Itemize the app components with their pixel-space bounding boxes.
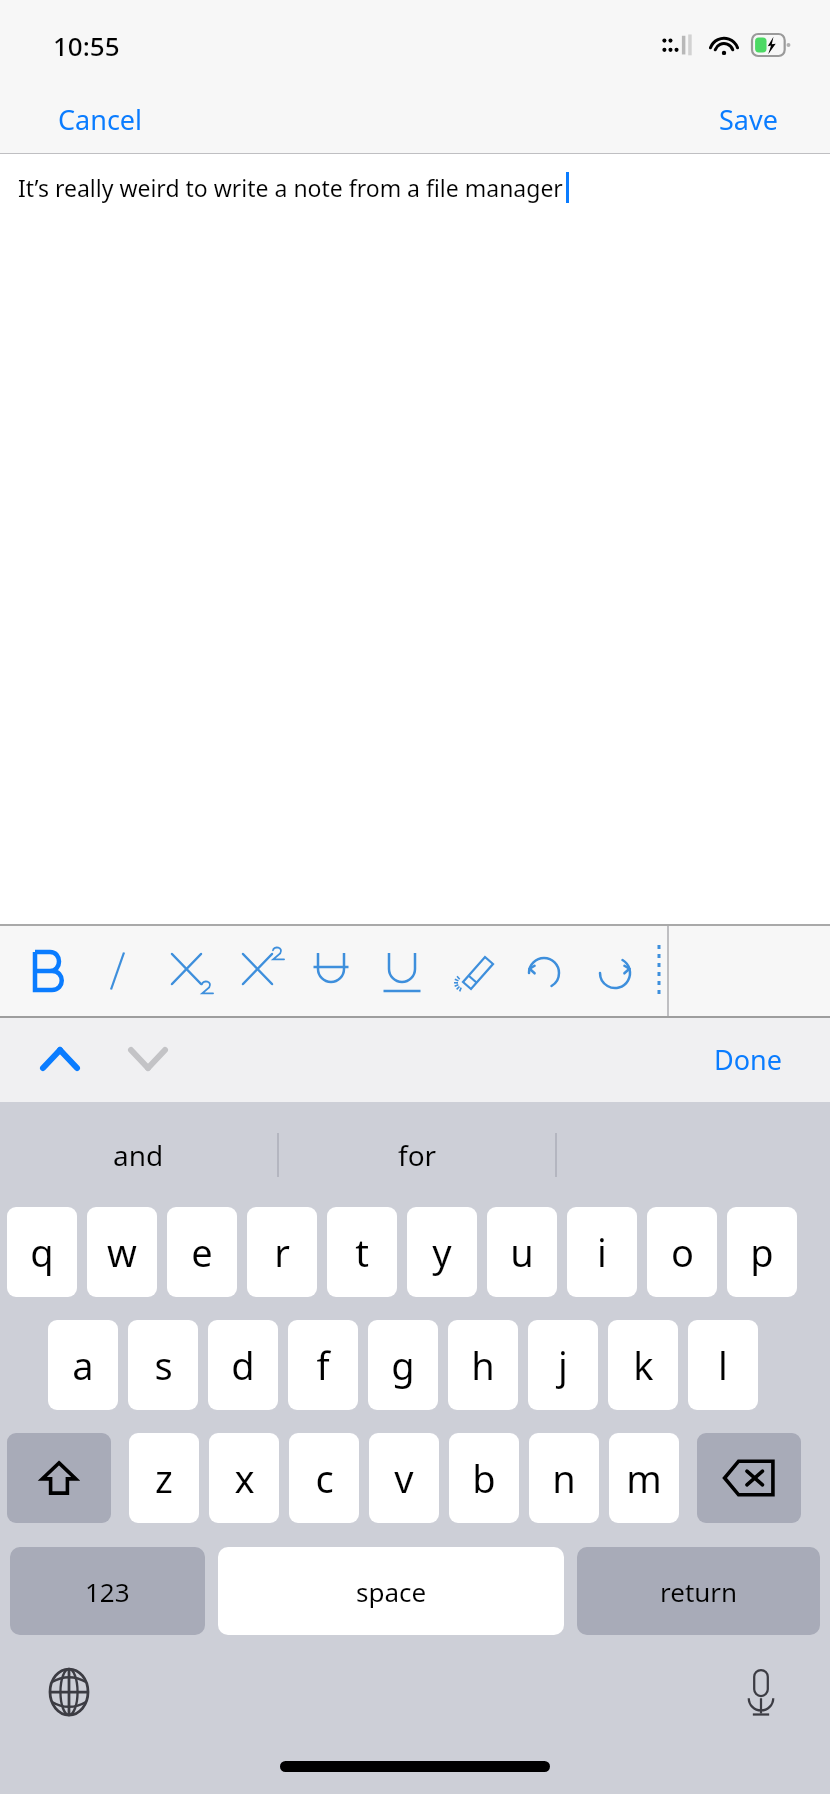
button[interactable]: y	[407, 1207, 477, 1297]
button[interactable]: for	[279, 1102, 555, 1207]
button[interactable]: c	[289, 1433, 359, 1523]
staticText: g	[391, 1339, 415, 1391]
staticText: k	[633, 1339, 654, 1391]
button[interactable]: Erase formatting	[440, 932, 506, 1010]
button[interactable]: i	[567, 1207, 637, 1297]
button[interactable]: u	[487, 1207, 557, 1297]
button[interactable]: Shift	[7, 1433, 111, 1523]
staticText: a	[72, 1339, 94, 1391]
staticText: Save	[719, 101, 778, 138]
button[interactable]: w	[87, 1207, 157, 1297]
button[interactable]: Dictate	[728, 1659, 794, 1725]
button[interactable]: a	[48, 1320, 118, 1410]
staticText: Done	[714, 1041, 782, 1078]
button[interactable]: t	[327, 1207, 397, 1297]
button[interactable]: o	[647, 1207, 717, 1297]
staticText: x	[234, 1452, 255, 1504]
button[interactable]: p	[727, 1207, 797, 1297]
button[interactable]: return	[577, 1547, 820, 1635]
button[interactable]: Cancel	[0, 91, 201, 148]
button[interactable]: Undo	[511, 932, 577, 1010]
button[interactable]: v	[369, 1433, 439, 1523]
button[interactable]: Underline	[369, 932, 435, 1010]
staticText: Cancel	[58, 101, 143, 138]
staticText: y	[432, 1226, 452, 1278]
staticText: e	[191, 1226, 213, 1278]
button[interactable]: m	[609, 1433, 679, 1523]
staticText: o	[671, 1226, 694, 1278]
staticText: n	[552, 1452, 576, 1504]
button[interactable]: Done	[666, 1029, 830, 1090]
button[interactable]: j	[528, 1320, 598, 1410]
button[interactable]: Backspace	[697, 1433, 801, 1523]
button[interactable]: 123	[10, 1547, 205, 1635]
button[interactable]: z	[129, 1433, 199, 1523]
button[interactable]: h	[448, 1320, 518, 1410]
button[interactable]: e	[167, 1207, 237, 1297]
button[interactable]: g	[368, 1320, 438, 1410]
button[interactable]: d	[208, 1320, 278, 1410]
staticText: space	[356, 1574, 427, 1609]
button[interactable]: Redo	[582, 932, 648, 1010]
staticText: j	[558, 1339, 568, 1391]
staticText: for	[398, 1136, 437, 1174]
button[interactable]: and	[0, 1102, 277, 1207]
staticText: q	[30, 1226, 54, 1278]
button[interactable]: Change keyboard	[36, 1659, 102, 1725]
staticText: b	[472, 1452, 496, 1504]
staticText: It’s really weird to write a note from a…	[18, 172, 563, 203]
staticText: m	[626, 1452, 662, 1504]
button[interactable]: Previous field	[24, 1023, 96, 1095]
staticText: f	[316, 1339, 330, 1391]
button[interactable]: q	[7, 1207, 77, 1297]
button[interactable]: k	[608, 1320, 678, 1410]
staticText: 123	[85, 1574, 130, 1609]
button[interactable]: Next field	[112, 1023, 184, 1095]
staticText: i	[597, 1226, 607, 1278]
staticText: u	[510, 1226, 534, 1278]
button[interactable]: Bold	[14, 932, 80, 1010]
staticText: s	[154, 1339, 173, 1391]
button[interactable]: b	[449, 1433, 519, 1523]
staticText: c	[315, 1452, 334, 1504]
button[interactable]: Save	[667, 91, 830, 148]
staticText: w	[107, 1226, 137, 1278]
button[interactable]: Strikethrough	[298, 932, 364, 1010]
button[interactable]: n	[529, 1433, 599, 1523]
staticText: r	[274, 1226, 290, 1278]
button[interactable]: space	[218, 1547, 564, 1635]
staticText: and	[113, 1136, 164, 1174]
staticText: h	[471, 1339, 495, 1391]
button[interactable]: r	[247, 1207, 317, 1297]
button[interactable]: l	[688, 1320, 758, 1410]
staticText: l	[718, 1339, 728, 1391]
button[interactable]: Subscript	[156, 932, 222, 1010]
button[interactable]: f	[288, 1320, 358, 1410]
staticText: d	[231, 1339, 255, 1391]
button[interactable]: Italic	[85, 932, 151, 1010]
staticText: p	[750, 1226, 774, 1278]
staticText: t	[355, 1226, 369, 1278]
button[interactable]: s	[128, 1320, 198, 1410]
staticText: v	[394, 1452, 414, 1504]
staticText: 10:55	[53, 28, 120, 63]
staticText: z	[155, 1452, 173, 1504]
button[interactable]: x	[209, 1433, 279, 1523]
staticText: return	[660, 1574, 738, 1609]
button[interactable]: Superscript	[227, 932, 293, 1010]
